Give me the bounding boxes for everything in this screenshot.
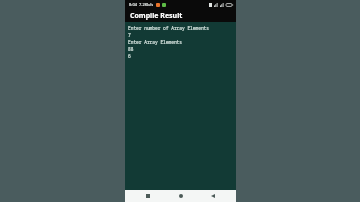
staticText: 8:04 [129,2,137,7]
button[interactable]: Back [203,190,223,202]
staticText: Compile Result [130,11,183,21]
staticText: 7 [128,32,131,38]
button[interactable]: Home [171,190,191,202]
staticText: Enter number of Array Elements [128,25,209,31]
staticText: 88 [128,46,134,52]
staticText: 7.2Kb/s [139,2,154,7]
staticText: 6 [128,53,131,59]
button[interactable]: Recent apps [138,190,158,202]
staticText: Enter Array Elements [128,39,182,45]
